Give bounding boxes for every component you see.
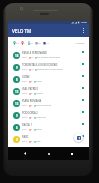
staticText: Podgoria <box>36 116 46 119</box>
staticText: 7 <box>31 128 33 131</box>
staticText: alb 3 <box>22 68 28 71</box>
staticText: alb 1 <box>22 56 28 59</box>
staticText: 12 <box>31 56 34 59</box>
staticText: VELO TM <box>12 28 32 34</box>
staticText: 40 <box>38 42 41 45</box>
staticText: 7 minute <box>75 42 85 45</box>
staticText: 9 <box>16 114 18 118</box>
staticText: TOROMTAULUI 8 BUCOVINEI <box>22 63 58 67</box>
staticText: Ste Regele Ferdinand <box>37 56 60 59</box>
staticText: 14 <box>46 42 49 45</box>
staticText: 6 <box>16 126 18 130</box>
staticText: PODGORIA 2 <box>22 111 38 115</box>
button[interactable]: 18 <box>8 49 89 61</box>
staticText: 34 <box>16 42 19 45</box>
staticText: alb 2 <box>22 116 28 119</box>
staticText: UZINE <box>22 75 30 79</box>
button[interactable]: Back <box>18 147 32 160</box>
staticText: 4 <box>31 116 33 119</box>
staticText: Uzine <box>36 80 43 83</box>
button[interactable]: 9 <box>8 61 89 73</box>
button[interactable]: 13 <box>8 85 89 97</box>
staticText: alb 1 <box>22 128 28 131</box>
staticText: alb 1 <box>22 80 28 83</box>
button[interactable]: 13 <box>8 97 89 109</box>
staticText: alb 2 <box>22 92 28 95</box>
staticText: Parc <box>36 140 41 143</box>
staticText: PARC <box>22 135 29 139</box>
staticText: 11:29 <box>81 21 87 24</box>
button[interactable]: 9 <box>8 109 89 121</box>
staticText: 1 <box>24 42 26 45</box>
staticText: Intersectia cu Bucovinei <box>37 68 63 71</box>
staticText: DACIA 1 <box>22 123 32 127</box>
staticText: 3 <box>16 138 18 142</box>
staticText: 6 <box>31 92 33 95</box>
staticText: 10 <box>31 68 34 71</box>
staticText: 13 <box>15 90 19 94</box>
staticText: VIAL PATRIEI <box>22 87 38 91</box>
button[interactable]: Home <box>42 147 56 160</box>
staticText: Piata Romana <box>36 104 51 107</box>
button[interactable]: Recent apps <box>65 147 79 160</box>
button[interactable]: More options <box>79 24 88 37</box>
staticText: 3 <box>31 140 33 143</box>
staticText: 20 <box>30 42 33 45</box>
staticText: 9 <box>16 66 18 70</box>
button[interactable]: 8 <box>8 73 89 85</box>
staticText: alb 3 <box>22 140 28 143</box>
button[interactable]: Share on Facebook <box>74 133 83 142</box>
staticText: Dacia <box>36 128 42 131</box>
button[interactable]: 3 <box>8 133 89 145</box>
button[interactable]: 6 <box>8 121 89 133</box>
staticText: 8 <box>31 80 33 83</box>
staticText: 9 <box>31 104 33 107</box>
staticText: 8 <box>16 78 18 82</box>
staticText: Patriei <box>36 92 43 95</box>
staticText: PIATA ROMANA <box>22 99 42 103</box>
staticText: alb 1 <box>22 104 28 107</box>
staticText: 18 <box>15 54 19 58</box>
staticText: REGELE FERDINAND <box>22 51 47 55</box>
staticText: 13 <box>15 102 19 106</box>
